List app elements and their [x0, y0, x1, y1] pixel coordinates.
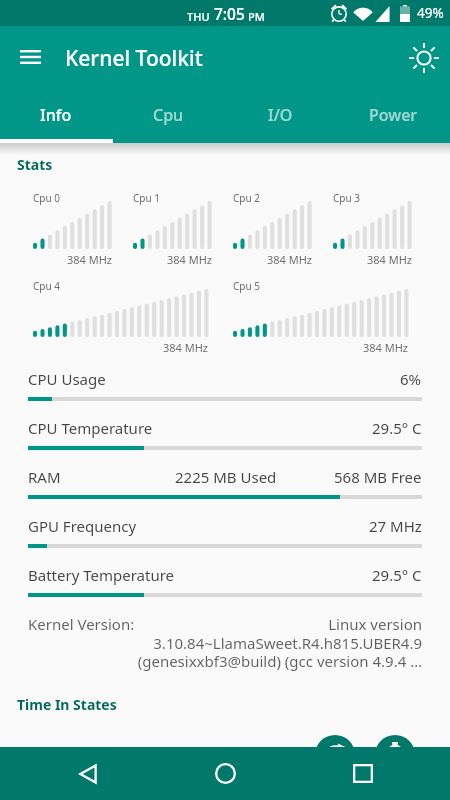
staticText: 29.5° C	[372, 565, 422, 585]
staticText: Cpu 5	[233, 279, 260, 293]
button[interactable]: Toggle brightness	[394, 26, 450, 87]
staticText: 27 MHz	[369, 516, 422, 536]
staticText: PM	[248, 9, 265, 24]
staticText: 7:05	[214, 3, 245, 24]
staticText: Battery Temperature	[28, 565, 175, 585]
staticText: 384 MHz	[33, 340, 208, 355]
staticText: THU	[187, 9, 210, 24]
button[interactable]: CPU Temperature	[0, 418, 450, 467]
button[interactable]: Info	[0, 87, 112, 143]
staticText: 568 MB Free	[334, 467, 422, 487]
staticText: 384 MHz	[333, 252, 412, 267]
staticText: Cpu 3	[333, 191, 360, 205]
staticText: Cpu 0	[33, 191, 60, 205]
staticText: Cpu 4	[33, 279, 60, 293]
staticText: 6%	[400, 369, 422, 389]
staticText: 29.5° C	[372, 418, 422, 438]
button[interactable]: RAM	[0, 467, 450, 516]
staticText: Kernel Version:	[28, 614, 135, 634]
staticText: CPU Usage	[28, 369, 106, 389]
button[interactable]: Open navigation menu	[4, 26, 56, 87]
button[interactable]: I/O	[224, 87, 337, 143]
button[interactable]: CPU Usage	[0, 369, 450, 418]
staticText: GPU Frequency	[28, 516, 137, 536]
staticText: 384 MHz	[33, 252, 112, 267]
staticText: Stats	[17, 155, 53, 174]
button[interactable]: Refresh	[315, 735, 355, 775]
staticText: Info	[40, 104, 72, 126]
staticText: Power	[369, 104, 418, 126]
staticText: 49%	[417, 4, 444, 22]
staticText: 384 MHz	[233, 340, 408, 355]
staticText: RAM	[28, 467, 61, 487]
button[interactable]: Battery Temperature	[0, 565, 450, 614]
button[interactable]: Cpu	[112, 87, 224, 143]
button[interactable]: GPU Frequency	[0, 516, 450, 565]
button[interactable]: Save	[375, 735, 415, 775]
button[interactable]: Home	[201, 747, 249, 800]
staticText: 2225 MB Used	[175, 467, 277, 487]
staticText: Kernel Toolkit	[65, 44, 203, 73]
staticText: CPU Temperature	[28, 418, 153, 438]
staticText: Time In States	[17, 695, 117, 714]
staticText: 384 MHz	[233, 252, 312, 267]
staticText: 384 MHz	[133, 252, 212, 267]
staticText: Cpu 1	[133, 191, 160, 205]
button[interactable]: Back	[64, 747, 112, 800]
staticText: Cpu 2	[233, 191, 260, 205]
staticText: I/O	[268, 104, 293, 126]
button[interactable]: Power	[337, 87, 450, 143]
staticText: Cpu	[153, 104, 184, 126]
staticText: Linux version 3.10.84~LlamaSweet.R4.h815…	[137, 614, 422, 671]
button[interactable]: Recent apps	[339, 747, 387, 800]
